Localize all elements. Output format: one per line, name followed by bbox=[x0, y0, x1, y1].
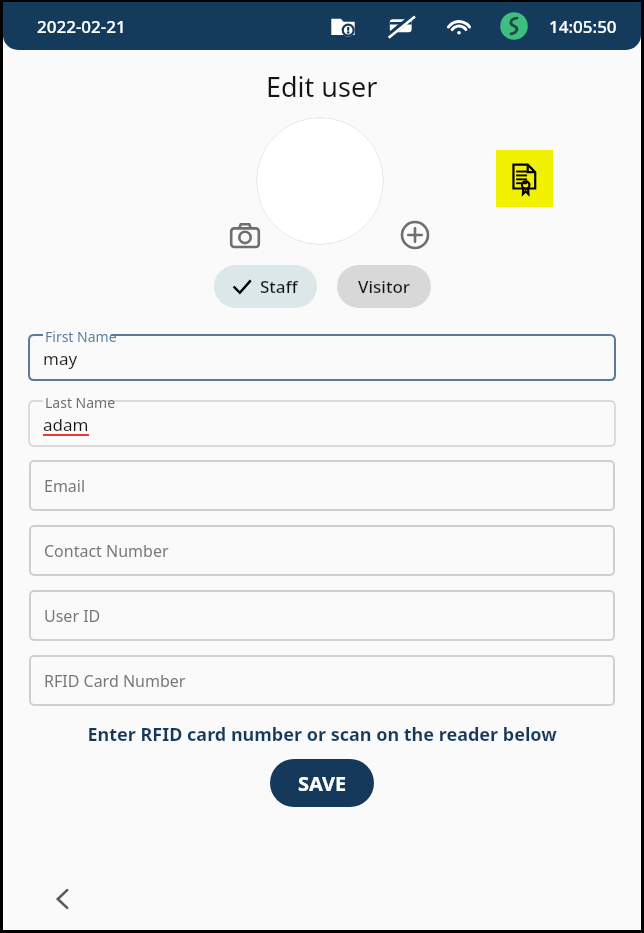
button[interactable]: Visitor bbox=[337, 265, 431, 308]
staticText: SAVE bbox=[298, 770, 347, 797]
staticText: Email bbox=[44, 475, 86, 497]
button[interactable]: RFID Card Number bbox=[29, 655, 615, 706]
staticText: Last Name bbox=[45, 393, 116, 412]
staticText: 2022-02-21 bbox=[37, 15, 126, 38]
staticText: Enter RFID card number or scan on the re… bbox=[87, 722, 557, 747]
button[interactable]: User photo bbox=[256, 117, 384, 245]
staticText: RFID Card Number bbox=[44, 670, 186, 692]
button[interactable]: Take photo bbox=[223, 213, 267, 257]
staticText: First Name bbox=[45, 327, 117, 346]
staticText: 14:05:50 bbox=[549, 15, 617, 38]
button[interactable]: Last Name bbox=[29, 394, 615, 446]
button[interactable]: User ID bbox=[29, 590, 615, 641]
staticText: Staff bbox=[260, 275, 298, 298]
button[interactable]: Back bbox=[43, 879, 83, 919]
button[interactable]: SAVE bbox=[270, 759, 374, 807]
staticText: Visitor bbox=[358, 275, 410, 298]
button[interactable]: Contact Number bbox=[29, 525, 615, 576]
staticText: adam bbox=[43, 413, 89, 436]
button[interactable]: First Name bbox=[29, 328, 615, 380]
button[interactable]: Staff bbox=[214, 265, 317, 308]
button[interactable]: Add photo bbox=[393, 213, 437, 257]
button[interactable]: Certificate bbox=[496, 150, 553, 207]
staticText: Contact Number bbox=[44, 540, 169, 562]
button[interactable]: Email bbox=[29, 460, 615, 511]
staticText: Edit user bbox=[266, 68, 378, 105]
staticText: User ID bbox=[44, 605, 101, 627]
staticText: may bbox=[43, 347, 78, 370]
